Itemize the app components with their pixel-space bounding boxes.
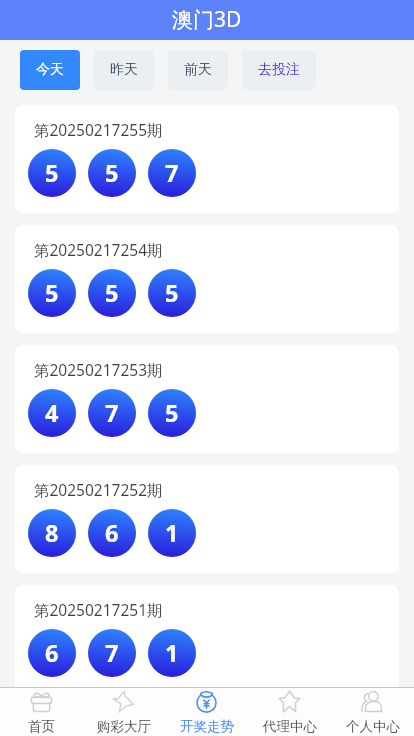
staticText: 1 [165,517,179,549]
staticText: 7 [105,397,119,429]
button[interactable]: 个人中心 [331,688,414,736]
button[interactable]: 去投注 [242,50,316,90]
staticText: 第20250217254期 [34,239,163,260]
staticText: 5 [45,157,59,189]
other: 开奖走势 [195,690,218,713]
staticText: 澳门3D [172,5,242,34]
staticText: 5 [165,397,179,429]
staticText: 第20250217253期 [34,359,163,380]
staticText: 昨天 [110,61,138,79]
staticText: 第20250217252期 [34,479,163,500]
staticText: 前天 [184,61,212,79]
button[interactable]: 第20250217253期 [15,345,399,453]
staticText: 8 [45,517,59,549]
staticText: 1 [165,637,179,669]
staticText: 首页 [28,718,55,735]
staticText: 个人中心 [346,718,400,735]
staticText: 去投注 [258,61,300,79]
button[interactable]: 昨天 [94,50,154,90]
staticText: 5 [105,277,119,309]
staticText: 7 [165,157,179,189]
button[interactable]: 代理中心 [248,688,331,736]
button[interactable]: 购彩大厅 [82,688,165,736]
staticText: 4 [45,397,59,429]
staticText: 第20250217255期 [34,119,163,140]
staticText: 6 [105,517,119,549]
button[interactable]: 开奖走势 [165,688,248,736]
staticText: 代理中心 [263,718,317,735]
staticText: 购彩大厅 [97,718,151,735]
staticText: 5 [105,157,119,189]
button[interactable]: 今天 [20,50,80,90]
staticText: 开奖走势 [180,718,234,735]
staticText: 今天 [36,61,64,79]
button[interactable]: 第20250217251期 [15,585,399,687]
staticText: 7 [105,637,119,669]
button[interactable]: 第20250217254期 [15,225,399,333]
staticText: 5 [45,277,59,309]
staticText: 第20250217251期 [34,599,163,620]
staticText: 5 [165,277,179,309]
staticText: 6 [45,637,59,669]
button[interactable]: 第20250217255期 [15,105,399,213]
button[interactable]: 首页 [0,688,82,736]
button[interactable]: 前天 [168,50,228,90]
button[interactable]: 第20250217252期 [15,465,399,573]
